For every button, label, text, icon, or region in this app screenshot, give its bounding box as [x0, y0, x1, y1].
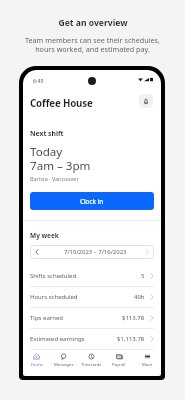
staticText: Get an overview [58, 17, 128, 29]
staticText: 40h [134, 293, 145, 301]
staticText: Home [31, 362, 43, 368]
staticText: Coffee House [30, 97, 93, 110]
staticText: Shifts scheduled [30, 272, 77, 280]
staticText: More [142, 362, 153, 368]
staticText: Clock in [80, 197, 104, 205]
staticText: Messages [54, 362, 74, 368]
staticText: Payroll [112, 362, 126, 368]
button[interactable]: Hours scheduled [30, 286, 154, 307]
button[interactable]: More [133, 347, 161, 373]
staticText: Barista · Vancouver [30, 175, 79, 182]
staticText: 7/10/2023 – 7/16/2023 [64, 248, 127, 256]
button[interactable]: Shifts scheduled [30, 265, 154, 286]
staticText: 5 [141, 272, 145, 280]
staticText: Estimated earnings [30, 335, 85, 343]
button[interactable]: Home [23, 347, 50, 373]
staticText: My week [30, 231, 59, 240]
staticText: Team members can see their schedules, ho… [25, 35, 160, 54]
button[interactable]: Tips earned [30, 307, 154, 328]
staticText: $1,113.78 [117, 335, 145, 343]
staticText: 6:45 [33, 77, 44, 84]
button[interactable]: Messages [50, 347, 77, 373]
button[interactable]: Timecards [77, 347, 105, 373]
button[interactable]: Notifications [139, 94, 153, 108]
button[interactable]: Payroll [105, 347, 133, 373]
staticText: 7am – 3pm [30, 158, 91, 174]
staticText: Today [30, 144, 63, 160]
staticText: Tips earned [30, 314, 64, 322]
button[interactable]: 7/10/2023 – 7/16/2023 [30, 245, 154, 259]
button[interactable]: Clock in [30, 192, 154, 210]
staticText: Next shift [30, 129, 64, 138]
staticText: $113.78 [122, 314, 145, 322]
button[interactable]: Estimated earnings [30, 328, 154, 349]
staticText: Hours scheduled [30, 293, 78, 301]
staticText: Timecards [81, 362, 102, 368]
